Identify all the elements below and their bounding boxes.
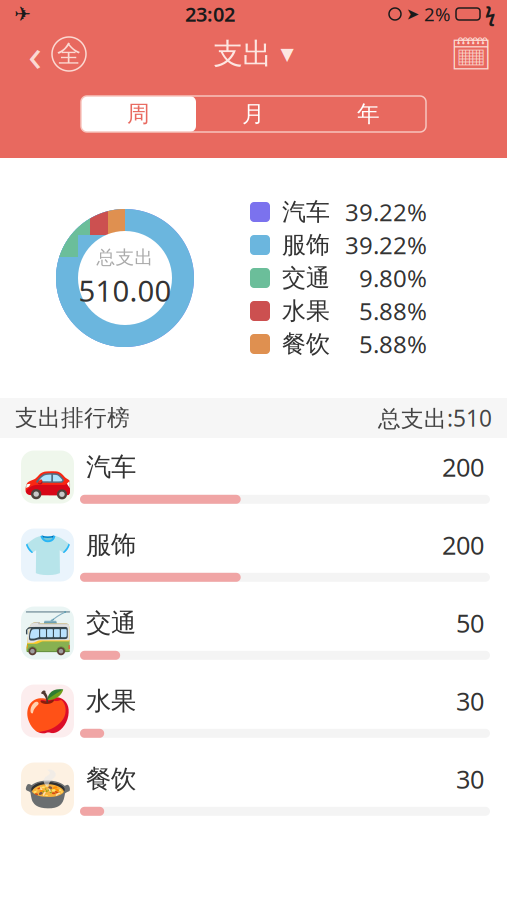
staticText: ➤: [406, 5, 419, 23]
staticText: ✈: [14, 3, 31, 25]
staticText: 5.88%: [359, 295, 427, 327]
staticText: 交通: [282, 263, 330, 293]
staticText: 50: [456, 606, 484, 640]
staticText: 30: [456, 762, 484, 796]
staticText: 2%: [424, 2, 451, 26]
staticText: 服饰: [86, 529, 136, 560]
staticText: 🚗: [22, 454, 72, 500]
staticText: 水果: [86, 685, 136, 716]
staticText: 🗓: [450, 35, 492, 73]
staticText: ▼: [280, 44, 293, 64]
staticText: 23:02: [185, 1, 235, 27]
staticText: 服饰: [282, 230, 330, 260]
button[interactable]: Back: [18, 31, 52, 77]
staticText: 🚎: [22, 610, 72, 656]
staticText: 交通: [86, 607, 136, 638]
staticText: 全: [57, 39, 81, 69]
staticText: 支出排行榜: [15, 404, 130, 432]
staticText: 餐饮: [86, 763, 136, 794]
staticText: 200: [442, 528, 484, 562]
button[interactable]: 🚗: [0, 438, 507, 516]
staticText: 510.00: [78, 271, 171, 310]
staticText: 周: [127, 100, 150, 128]
button[interactable]: 🍲: [0, 750, 507, 828]
button[interactable]: 月: [196, 96, 311, 132]
staticText: 39.22%: [345, 196, 427, 228]
button[interactable]: 👕: [0, 516, 507, 594]
staticText: 汽车: [282, 197, 330, 227]
staticText: 🍎: [22, 688, 72, 734]
staticText: 👕: [22, 532, 72, 578]
button[interactable]: 🍎: [0, 672, 507, 750]
staticText: 9.80%: [359, 262, 427, 294]
staticText: 总支出: [96, 246, 153, 269]
button[interactable]: All accounts: [52, 37, 86, 71]
staticText: 30: [456, 684, 484, 718]
staticText: ‹: [28, 24, 42, 84]
staticText: 年: [357, 100, 380, 128]
staticText: 总支出:510: [378, 403, 492, 433]
staticText: 月: [242, 100, 265, 128]
staticText: 汽车: [86, 451, 136, 482]
button[interactable]: 🚎: [0, 594, 507, 672]
button[interactable]: 年: [311, 96, 426, 132]
button[interactable]: 周: [81, 96, 196, 132]
staticText: 5.88%: [359, 328, 427, 360]
staticText: 200: [442, 450, 484, 484]
button[interactable]: Calendar: [451, 34, 491, 74]
staticText: 🍲: [22, 766, 72, 812]
staticText: ϟ: [485, 2, 495, 26]
staticText: 支出: [213, 36, 271, 72]
staticText: 39.22%: [345, 229, 427, 261]
staticText: 水果: [282, 296, 330, 326]
button[interactable]: 支出: [205, 30, 301, 78]
staticText: 餐饮: [282, 329, 330, 359]
